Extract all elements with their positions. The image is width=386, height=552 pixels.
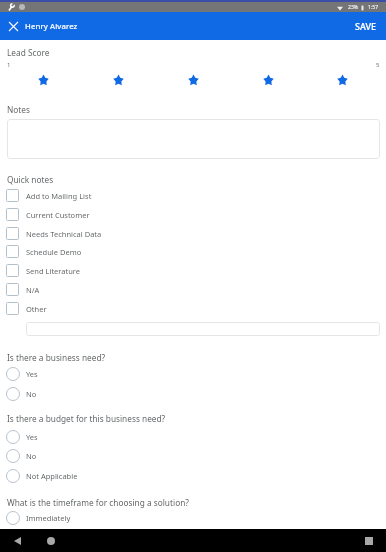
button[interactable]: Current Customer (0, 208, 386, 227)
button[interactable]: N/A (0, 283, 386, 302)
staticText: SAVE (355, 20, 377, 32)
button[interactable]: Home (43, 533, 59, 549)
button[interactable]: Schedule Demo (0, 245, 386, 264)
button[interactable]: Rate (109, 71, 127, 89)
staticText: What is the timeframe for choosing a sol… (7, 497, 189, 508)
staticText: Lead Score (7, 47, 50, 58)
button[interactable]: Back (9, 533, 25, 549)
staticText: 5 (376, 61, 380, 69)
staticText: Quick notes (7, 174, 54, 185)
staticText: No (26, 389, 37, 399)
staticText: Immediately (26, 513, 71, 523)
button[interactable]: Immediately (0, 508, 386, 528)
staticText: Yes (26, 369, 38, 379)
button[interactable]: Recents (361, 533, 377, 549)
staticText: 1 (7, 61, 11, 69)
staticText: Not Applicable (26, 471, 78, 481)
staticText: Is there a budget for this business need… (7, 413, 166, 424)
staticText: Is there a business need? (7, 352, 106, 363)
staticText: Add to Mailing List (26, 191, 92, 201)
button[interactable]: Rate (34, 71, 52, 89)
staticText: Send Literature (26, 266, 81, 276)
staticText: Notes (7, 104, 30, 115)
button[interactable]: Other (0, 302, 386, 321)
button[interactable]: No (0, 384, 386, 404)
staticText: N/A (26, 285, 40, 295)
button[interactable]: Yes (0, 427, 386, 447)
button[interactable]: Yes (0, 364, 386, 384)
staticText: 1:57 (368, 4, 379, 11)
staticText: Other (26, 304, 47, 314)
button[interactable]: Rate (184, 71, 202, 89)
button[interactable] (7, 119, 380, 159)
button[interactable]: Rate (333, 71, 351, 89)
button[interactable]: Needs Technical Data (0, 227, 386, 246)
staticText: Current Customer (26, 210, 90, 220)
staticText: 23% (348, 4, 359, 11)
staticText: Needs Technical Data (26, 229, 102, 239)
button[interactable]: Add to Mailing List (0, 189, 386, 208)
staticText: Schedule Demo (26, 247, 82, 257)
button[interactable]: Not Applicable (0, 466, 386, 486)
staticText: No (26, 451, 37, 461)
button[interactable]: SAVE (346, 12, 386, 40)
button[interactable]: No (0, 446, 386, 466)
staticText: Henry Alvarez (25, 21, 78, 32)
button[interactable] (26, 322, 380, 336)
button[interactable]: Send Literature (0, 264, 386, 283)
staticText: Yes (26, 432, 38, 442)
button[interactable]: Rate (259, 71, 277, 89)
button[interactable]: Close (0, 13, 27, 40)
